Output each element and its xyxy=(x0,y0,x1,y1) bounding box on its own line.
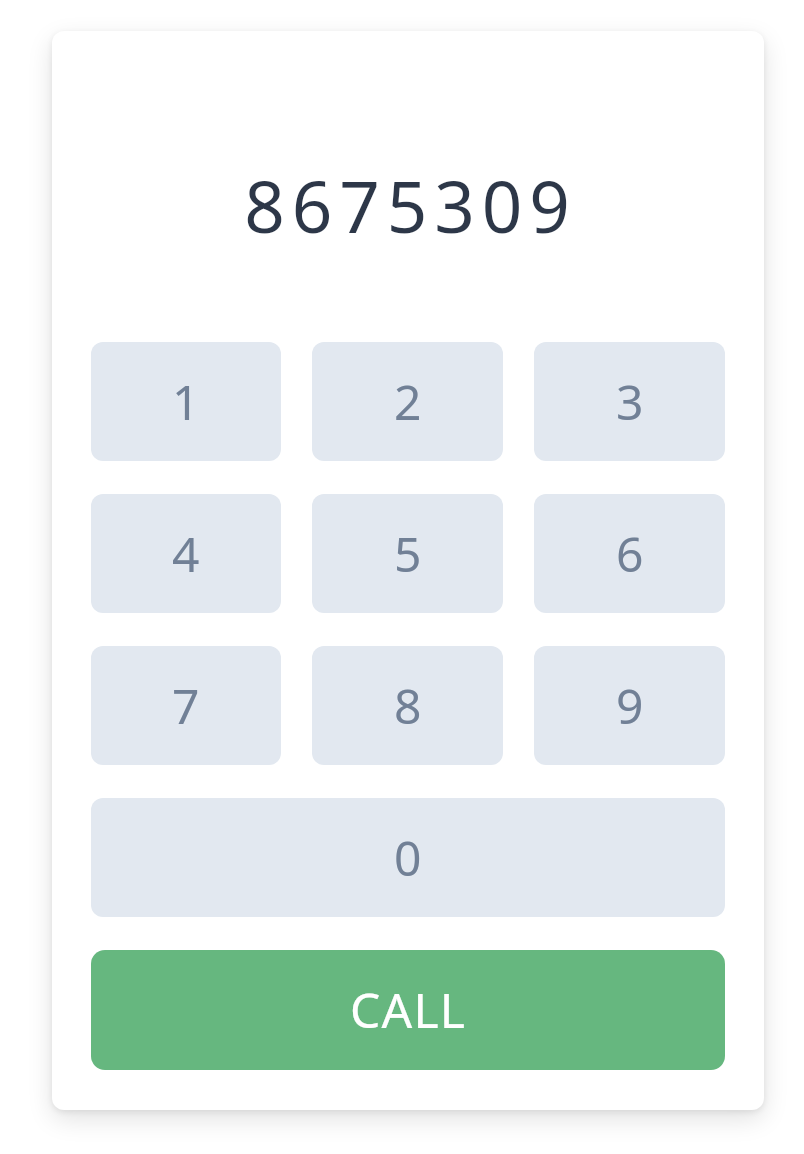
button[interactable]: Dial 2 xyxy=(312,342,503,461)
staticText: 2 xyxy=(394,369,422,434)
staticText: 4 xyxy=(172,521,200,586)
staticText: 8 xyxy=(394,673,422,738)
staticText: 7 xyxy=(172,673,200,738)
staticText: CALL xyxy=(350,977,467,1042)
button[interactable]: Dial 0 xyxy=(91,798,725,917)
button[interactable]: Dial 7 xyxy=(91,646,281,765)
button[interactable]: Dial 9 xyxy=(534,646,725,765)
button[interactable]: Dial 4 xyxy=(91,494,281,613)
button[interactable]: Dial 6 xyxy=(534,494,725,613)
button[interactable]: CALL xyxy=(91,950,725,1070)
button[interactable]: Dial 1 xyxy=(91,342,281,461)
button[interactable]: Dial 3 xyxy=(534,342,725,461)
staticText: 3 xyxy=(616,369,644,434)
button[interactable]: Dial 8 xyxy=(312,646,503,765)
button[interactable]: Dial 5 xyxy=(312,494,503,613)
staticText: 8675309 xyxy=(244,157,577,247)
staticText: 0 xyxy=(394,825,422,890)
staticText: 6 xyxy=(616,521,644,586)
staticText: 9 xyxy=(616,673,644,738)
staticText: 5 xyxy=(394,521,422,586)
staticText: 1 xyxy=(172,369,200,434)
